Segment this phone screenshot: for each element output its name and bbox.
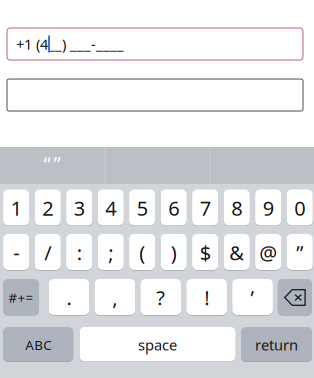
button[interactable]: ABC bbox=[3, 327, 73, 362]
button[interactable]: / bbox=[35, 234, 61, 270]
staticText: “ ” bbox=[43, 150, 60, 177]
staticText: 6 bbox=[168, 195, 179, 221]
staticText: ( bbox=[139, 239, 145, 266]
staticText: ! bbox=[204, 284, 209, 311]
staticText: ) bbox=[171, 239, 177, 266]
button[interactable]: . bbox=[49, 279, 89, 315]
button[interactable]: ” bbox=[287, 234, 313, 270]
button[interactable]: 6 bbox=[161, 190, 187, 226]
staticText: ? bbox=[156, 284, 165, 311]
staticText: . bbox=[66, 284, 71, 311]
button[interactable]: 7 bbox=[192, 190, 218, 226]
staticText: 1 bbox=[11, 195, 22, 221]
staticText: +1 (4__) ___-____ bbox=[16, 34, 124, 54]
button[interactable]: ( bbox=[129, 234, 155, 270]
button[interactable]: 9 bbox=[255, 190, 281, 226]
button[interactable]: 2 bbox=[35, 190, 61, 226]
button[interactable]: , bbox=[94, 279, 135, 315]
button[interactable]: return bbox=[241, 327, 312, 362]
button[interactable]: ! bbox=[186, 279, 227, 315]
button[interactable]: 0 bbox=[287, 190, 313, 226]
staticText: $ bbox=[200, 239, 211, 266]
button[interactable]: ’ bbox=[232, 279, 273, 315]
staticText: - bbox=[13, 239, 19, 266]
button[interactable]: @ bbox=[255, 234, 281, 270]
button[interactable]: - bbox=[3, 234, 29, 270]
staticText: @ bbox=[259, 239, 277, 266]
staticText: : bbox=[77, 239, 82, 266]
staticText: , bbox=[112, 284, 117, 311]
button[interactable]: Delete bbox=[278, 279, 312, 315]
staticText: ABC bbox=[25, 336, 51, 354]
button[interactable]: 5 bbox=[129, 190, 155, 226]
staticText: 7 bbox=[200, 195, 211, 221]
staticText: ’ bbox=[250, 284, 254, 311]
staticText: 5 bbox=[137, 195, 148, 221]
button[interactable]: #+= bbox=[3, 279, 39, 315]
button[interactable]: ; bbox=[98, 234, 124, 270]
button[interactable]: 4 bbox=[98, 190, 124, 226]
staticText: space bbox=[138, 335, 177, 354]
staticText: 8 bbox=[231, 195, 242, 221]
staticText: 2 bbox=[42, 195, 53, 221]
button[interactable]: 8 bbox=[224, 190, 250, 226]
button[interactable]: “ ” bbox=[0, 147, 104, 180]
staticText: / bbox=[44, 239, 51, 266]
staticText: & bbox=[229, 239, 244, 266]
staticText: ; bbox=[108, 239, 113, 266]
staticText: 0 bbox=[294, 195, 305, 221]
staticText: 4 bbox=[105, 195, 116, 221]
button[interactable]: $ bbox=[192, 234, 218, 270]
button[interactable]: : bbox=[66, 234, 92, 270]
button[interactable]: ) bbox=[161, 234, 187, 270]
staticText: 3 bbox=[74, 195, 85, 221]
staticText: ” bbox=[296, 239, 303, 266]
button[interactable]: 1 bbox=[3, 190, 29, 226]
button[interactable]: & bbox=[224, 234, 250, 270]
button[interactable]: ? bbox=[140, 279, 181, 315]
staticText: return bbox=[255, 335, 298, 354]
button[interactable]: space bbox=[80, 327, 236, 362]
button[interactable]: 3 bbox=[66, 190, 92, 226]
staticText: 9 bbox=[263, 195, 274, 221]
staticText: #+= bbox=[8, 289, 33, 306]
